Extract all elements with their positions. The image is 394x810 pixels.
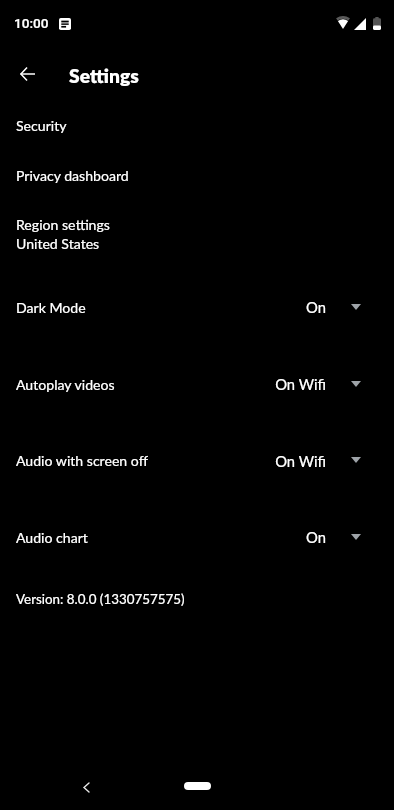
staticText: United States xyxy=(16,235,100,252)
button[interactable]: Back xyxy=(72,773,100,801)
staticText: On xyxy=(185,298,326,316)
staticText: Dark Mode xyxy=(16,299,86,316)
button[interactable]: Audio with screen off xyxy=(0,431,394,503)
button[interactable]: Autoplay videos xyxy=(0,355,394,427)
button[interactable]: Security xyxy=(0,104,394,154)
staticText: Settings xyxy=(69,64,139,87)
staticText: Region settings xyxy=(16,216,110,233)
button[interactable]: Audio chart xyxy=(0,508,394,580)
button[interactable]: Region settings xyxy=(0,204,394,268)
button[interactable]: Navigate up xyxy=(3,50,51,98)
staticText: On xyxy=(185,528,326,546)
staticText: Audio chart xyxy=(16,529,88,546)
staticText: Autoplay videos xyxy=(16,376,115,393)
staticText: Privacy dashboard xyxy=(16,167,129,184)
staticText: On Wifi xyxy=(185,452,326,470)
staticText: 10:00 xyxy=(14,15,49,31)
button[interactable]: Dark Mode xyxy=(0,278,394,350)
staticText: Security xyxy=(16,117,67,134)
button[interactable]: Home xyxy=(172,772,222,800)
button[interactable]: Privacy dashboard xyxy=(0,154,394,204)
staticText: Version: 8.0.0 (1330757575) xyxy=(16,591,185,607)
staticText: Audio with screen off xyxy=(16,452,149,469)
staticText: On Wifi xyxy=(185,375,326,393)
